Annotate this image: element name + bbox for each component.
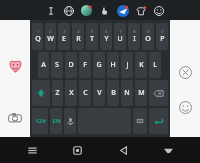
button[interactable]: Camera bbox=[4, 107, 26, 129]
staticText: S bbox=[55, 60, 59, 70]
button[interactable]: Skins bbox=[134, 4, 147, 17]
button[interactable]: X bbox=[65, 80, 77, 106]
button[interactable]: Sticker store bbox=[116, 4, 129, 17]
button[interactable]: C bbox=[79, 80, 91, 106]
button[interactable]: 3 bbox=[58, 23, 70, 50]
staticText: 4 bbox=[77, 29, 80, 34]
other: Settings bbox=[136, 117, 144, 125]
staticText: 7 bbox=[119, 29, 122, 34]
staticText: F bbox=[83, 60, 87, 70]
button[interactable]: 6 bbox=[100, 23, 112, 50]
button[interactable]: 8 bbox=[128, 23, 140, 50]
button[interactable]: 12# bbox=[32, 108, 48, 134]
button[interactable]: Emoji bbox=[152, 4, 165, 17]
staticText: G bbox=[96, 60, 102, 70]
button[interactable]: Z bbox=[52, 80, 63, 106]
button[interactable]: Language bbox=[62, 4, 75, 17]
button[interactable]: J bbox=[121, 52, 133, 78]
staticText: H bbox=[110, 60, 116, 70]
button[interactable]: Shift bbox=[32, 80, 50, 106]
button[interactable]: L bbox=[149, 52, 161, 78]
staticText: P bbox=[160, 34, 165, 44]
button[interactable]: Close bbox=[175, 62, 195, 82]
staticText: W bbox=[47, 34, 54, 44]
staticText: X bbox=[69, 88, 74, 98]
other: Enter bbox=[153, 116, 164, 127]
button[interactable]: Theme bbox=[80, 4, 93, 17]
button[interactable]: N bbox=[121, 80, 133, 106]
button[interactable]: 1 bbox=[32, 23, 43, 50]
staticText: Q bbox=[35, 34, 41, 44]
staticText: V bbox=[97, 88, 102, 98]
staticText: T bbox=[90, 34, 94, 44]
staticText: R bbox=[76, 34, 81, 44]
staticText: E bbox=[62, 34, 66, 44]
staticText: N bbox=[124, 88, 130, 98]
staticText: M bbox=[138, 88, 145, 98]
staticText: 6 bbox=[105, 29, 108, 34]
staticText: 9 bbox=[147, 29, 150, 34]
staticText: 12# bbox=[35, 117, 46, 125]
other: Shift bbox=[36, 88, 46, 98]
button[interactable]: M bbox=[135, 80, 147, 106]
button[interactable]: Home bbox=[64, 137, 90, 163]
button[interactable]: 5 bbox=[86, 23, 98, 50]
other: Backspace bbox=[153, 88, 164, 99]
button[interactable]: Heart sticker bbox=[5, 55, 25, 75]
button[interactable]: Back bbox=[110, 137, 136, 163]
button[interactable]: Recents bbox=[19, 137, 45, 163]
staticText: A bbox=[41, 60, 46, 70]
staticText: I bbox=[133, 34, 136, 44]
staticText: Z bbox=[55, 88, 60, 98]
button[interactable]: D bbox=[65, 52, 77, 78]
button[interactable]: 9 bbox=[142, 23, 154, 50]
staticText: O bbox=[145, 34, 151, 44]
staticText: C bbox=[83, 88, 88, 98]
button[interactable]: Text tools bbox=[44, 4, 57, 17]
staticText: 2 bbox=[49, 29, 52, 34]
button[interactable]: B bbox=[107, 80, 119, 106]
staticText: 1 bbox=[37, 29, 40, 34]
staticText: L bbox=[153, 60, 157, 70]
button[interactable]: Settings bbox=[133, 108, 147, 134]
button[interactable]: F bbox=[79, 52, 91, 78]
button[interactable]: Hide keyboard bbox=[155, 137, 181, 163]
button[interactable]: 7 bbox=[114, 23, 126, 50]
button[interactable]: Voice input bbox=[64, 108, 76, 134]
staticText: D bbox=[68, 60, 74, 70]
button[interactable]: 2 bbox=[45, 23, 56, 50]
button[interactable]: Enter bbox=[149, 108, 168, 134]
button[interactable]: G bbox=[93, 52, 105, 78]
staticText: 5 bbox=[91, 29, 94, 34]
button[interactable]: A bbox=[38, 52, 49, 78]
staticText: Y bbox=[104, 34, 109, 44]
button[interactable]: H bbox=[107, 52, 119, 78]
button[interactable]: 4 bbox=[72, 23, 84, 50]
button[interactable]: 0 bbox=[156, 23, 168, 50]
staticText: EN bbox=[52, 117, 61, 125]
staticText: U bbox=[117, 34, 123, 44]
button[interactable]: EN bbox=[50, 108, 62, 134]
button[interactable]: K bbox=[135, 52, 147, 78]
button[interactable]: S bbox=[51, 52, 63, 78]
staticText: B bbox=[111, 88, 116, 98]
button[interactable]: Backspace bbox=[149, 80, 168, 106]
button[interactable]: V bbox=[93, 80, 105, 106]
staticText: J bbox=[126, 60, 129, 70]
staticText: 0 bbox=[161, 29, 164, 34]
staticText: K bbox=[139, 60, 144, 70]
button[interactable]: Emoji bbox=[175, 97, 195, 117]
staticText: 3 bbox=[63, 29, 66, 34]
staticText: 8 bbox=[133, 29, 136, 34]
other: Voice input bbox=[66, 117, 75, 126]
button[interactable]: Gesture bbox=[98, 4, 111, 17]
